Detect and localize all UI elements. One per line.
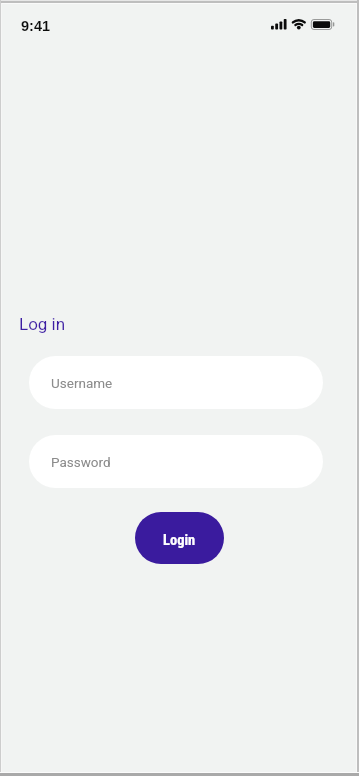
staticText: Username	[51, 375, 113, 391]
staticText: 9:41	[21, 18, 51, 34]
button[interactable]: Username	[29, 356, 323, 409]
button[interactable]: Login	[135, 512, 224, 564]
button[interactable]: Password	[29, 435, 323, 488]
staticText: Log in	[19, 314, 66, 334]
staticText: Login	[163, 532, 196, 549]
other: Signal, Wi-Fi and battery status	[0, 0, 359, 776]
staticText: Password	[51, 454, 111, 470]
